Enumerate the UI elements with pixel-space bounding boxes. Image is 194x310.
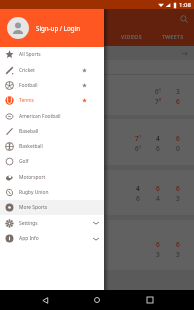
staticText: T. Berdych <box>6 195 36 203</box>
staticText: R. Nadal <box>6 241 30 249</box>
staticText: 6 <box>135 144 139 153</box>
button[interactable]: Search <box>177 12 190 25</box>
staticText: Tennis <box>19 97 34 104</box>
staticText: 7 <box>155 97 159 106</box>
button[interactable]: Motorsport <box>0 169 104 185</box>
button[interactable]: Home <box>89 292 105 308</box>
staticText: All Sports <box>19 51 41 58</box>
staticText: 6 <box>176 97 180 106</box>
button[interactable]: Sign-up / Login <box>0 9 104 47</box>
button[interactable]: Rugby Union <box>0 185 104 200</box>
staticText: 3 <box>176 250 180 259</box>
button[interactable]: American Football <box>0 108 104 124</box>
button[interactable]: Cricket <box>0 62 104 78</box>
staticText: 6 <box>156 144 160 153</box>
staticText: 6 <box>176 240 180 249</box>
button[interactable]: More Sports <box>0 200 104 215</box>
staticText: 6 <box>156 184 160 193</box>
button[interactable]: A. Murray <box>0 119 194 165</box>
staticText: More Sports <box>19 204 48 211</box>
staticText: ATP World Tour Finals <box>6 50 58 57</box>
button[interactable]: Back <box>37 292 53 308</box>
staticText: Golf <box>19 158 29 165</box>
button[interactable]: Tennis <box>0 93 104 108</box>
staticText: 7 <box>139 134 142 139</box>
staticText: App Info <box>19 235 39 242</box>
button[interactable]: VIDEOS <box>110 28 152 46</box>
staticText: Motorsport <box>19 174 46 181</box>
staticText: Settings <box>19 220 38 227</box>
staticText: S. Wawrinka <box>6 185 41 193</box>
staticText: TWEETS <box>162 34 184 41</box>
staticText: 8 <box>159 97 162 102</box>
staticText: 7 <box>135 134 139 143</box>
staticText: Basketball <box>19 143 43 150</box>
staticText: Sign-up / Login <box>36 24 80 32</box>
button[interactable]: Baseball <box>0 124 104 139</box>
staticText: R. Federer <box>6 98 35 106</box>
staticText: Cricket <box>19 67 35 74</box>
staticText: Baseball <box>19 128 39 135</box>
staticText: 2 <box>139 144 142 149</box>
button[interactable]: R. Nadal <box>0 220 194 270</box>
staticText: Round Robin <box>6 64 34 70</box>
button[interactable]: SCORES <box>68 28 110 46</box>
staticText: 6 <box>176 134 180 143</box>
staticText: 6 <box>155 87 159 96</box>
staticText: K. Nishikori <box>6 145 38 153</box>
staticText: N. Djokovic <box>6 88 38 96</box>
staticText: Rugby Union <box>19 189 49 196</box>
staticText: Football <box>19 82 38 89</box>
staticText: 6 <box>156 240 160 249</box>
staticText: VIDEOS <box>121 34 142 41</box>
button[interactable]: App Info <box>0 231 104 246</box>
button[interactable]: TWEETS <box>152 28 194 46</box>
button[interactable]: Round Robin <box>0 60 194 115</box>
staticText: 6 <box>136 194 140 203</box>
staticText: 4 <box>156 134 160 143</box>
button[interactable]: Golf <box>0 154 104 169</box>
button[interactable]: Recent apps <box>142 292 158 308</box>
staticText: American Football <box>19 113 61 120</box>
staticText: A. Murray <box>6 135 34 143</box>
button[interactable]: Basketball <box>0 139 104 154</box>
button[interactable]: ATP World Tour Finals <box>0 46 194 60</box>
staticText: 4 <box>156 194 160 203</box>
staticText: 6 <box>176 184 180 193</box>
button[interactable]: S. Wawrinka <box>0 170 194 215</box>
staticText: 3 <box>176 194 180 203</box>
staticText: 4 <box>136 184 140 193</box>
button[interactable]: All Sports <box>0 47 104 62</box>
staticText: 3 <box>176 87 180 96</box>
staticText: 6 <box>159 87 162 92</box>
button[interactable]: Football <box>0 78 104 93</box>
staticText: 1:08 <box>179 1 191 9</box>
button[interactable]: Settings <box>0 215 104 231</box>
staticText: 3 <box>156 250 160 259</box>
staticText: 0 <box>176 144 180 153</box>
